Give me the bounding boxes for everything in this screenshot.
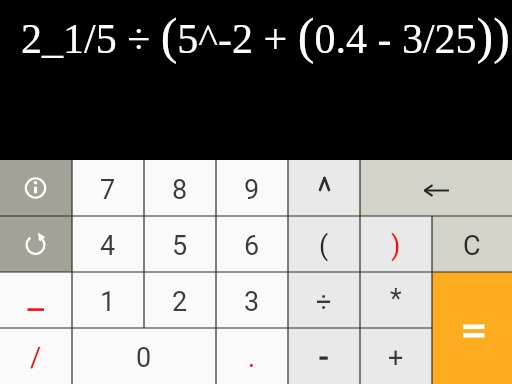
staticText: ) [391,230,401,262]
staticText: * [390,283,402,315]
button[interactable]: * [360,272,432,328]
staticText: 4 [100,230,116,262]
staticText: / [30,342,42,374]
button[interactable]: 2 [144,272,216,328]
staticText: . [248,342,256,374]
staticText: 7 [100,174,116,206]
staticText: 5 [172,230,188,262]
staticText: ( [319,230,329,262]
staticText: 2 [172,286,188,318]
staticText: 8 [172,174,188,206]
button[interactable]: ÷ [288,272,360,328]
staticText: 3 [244,286,260,318]
button[interactable] [0,272,72,328]
staticText: 2_1/5 ÷ (5^-2 + (0.4 - 3/25)) [21,8,510,63]
button[interactable]: 6 [216,216,288,272]
button[interactable]: / [0,328,72,384]
button[interactable]: 9 [216,160,288,216]
button[interactable]: 1 [72,272,144,328]
staticText: 1 [100,286,116,318]
button[interactable]: + [360,328,432,384]
staticText: C [463,230,481,262]
staticText: 9 [244,174,260,206]
button[interactable] [360,160,512,216]
button[interactable]: 0 [72,328,216,384]
button[interactable] [0,216,72,272]
button[interactable]: 4 [72,216,144,272]
button[interactable]: . [216,328,288,384]
staticText: 6 [244,230,260,262]
button[interactable]: ( [288,216,360,272]
staticText: ÷ [316,286,332,318]
button[interactable] [288,160,360,216]
button[interactable]: 7 [72,160,144,216]
button[interactable] [0,160,72,216]
button[interactable]: C [432,216,512,272]
button[interactable]: ) [360,216,432,272]
button[interactable] [432,272,512,384]
button[interactable]: 8 [144,160,216,216]
staticText: + [388,342,404,374]
button[interactable] [288,328,360,384]
button[interactable]: 3 [216,272,288,328]
button[interactable]: 5 [144,216,216,272]
staticText: 0 [136,342,152,374]
